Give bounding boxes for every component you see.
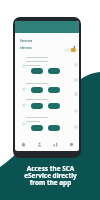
button[interactable]	[48, 103, 60, 109]
staticText: Services	[20, 39, 33, 43]
button[interactable]: Profile	[31, 137, 47, 151]
button[interactable]	[48, 68, 60, 74]
button[interactable]	[31, 68, 43, 74]
staticText: Access the SCA eService directly from th…	[24, 164, 77, 186]
button[interactable]: Home	[15, 137, 31, 151]
button[interactable]	[31, 125, 43, 131]
button[interactable]	[31, 103, 43, 109]
button[interactable]	[48, 125, 60, 131]
button[interactable]	[31, 87, 43, 93]
button[interactable]: More	[63, 137, 79, 151]
staticText: eServices	[20, 46, 32, 49]
button[interactable]	[48, 87, 60, 93]
button[interactable]: Statistics	[47, 137, 63, 151]
